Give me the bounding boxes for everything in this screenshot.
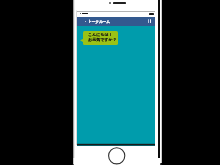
staticText: こんにちは！ お元気ですか？ <box>88 32 117 42</box>
staticText: トークルーム <box>88 20 110 25</box>
staticText: こんにちは！ お元気ですか？ <box>88 32 117 42</box>
staticText: トークルーム <box>88 20 110 25</box>
button[interactable]: Members <box>144 17 153 26</box>
button[interactable]: こんにちは！ お元気ですか？ <box>83 31 118 45</box>
button[interactable]: Back <box>81 17 89 26</box>
staticText: こんにちは！ お元気ですか？ <box>88 32 117 42</box>
